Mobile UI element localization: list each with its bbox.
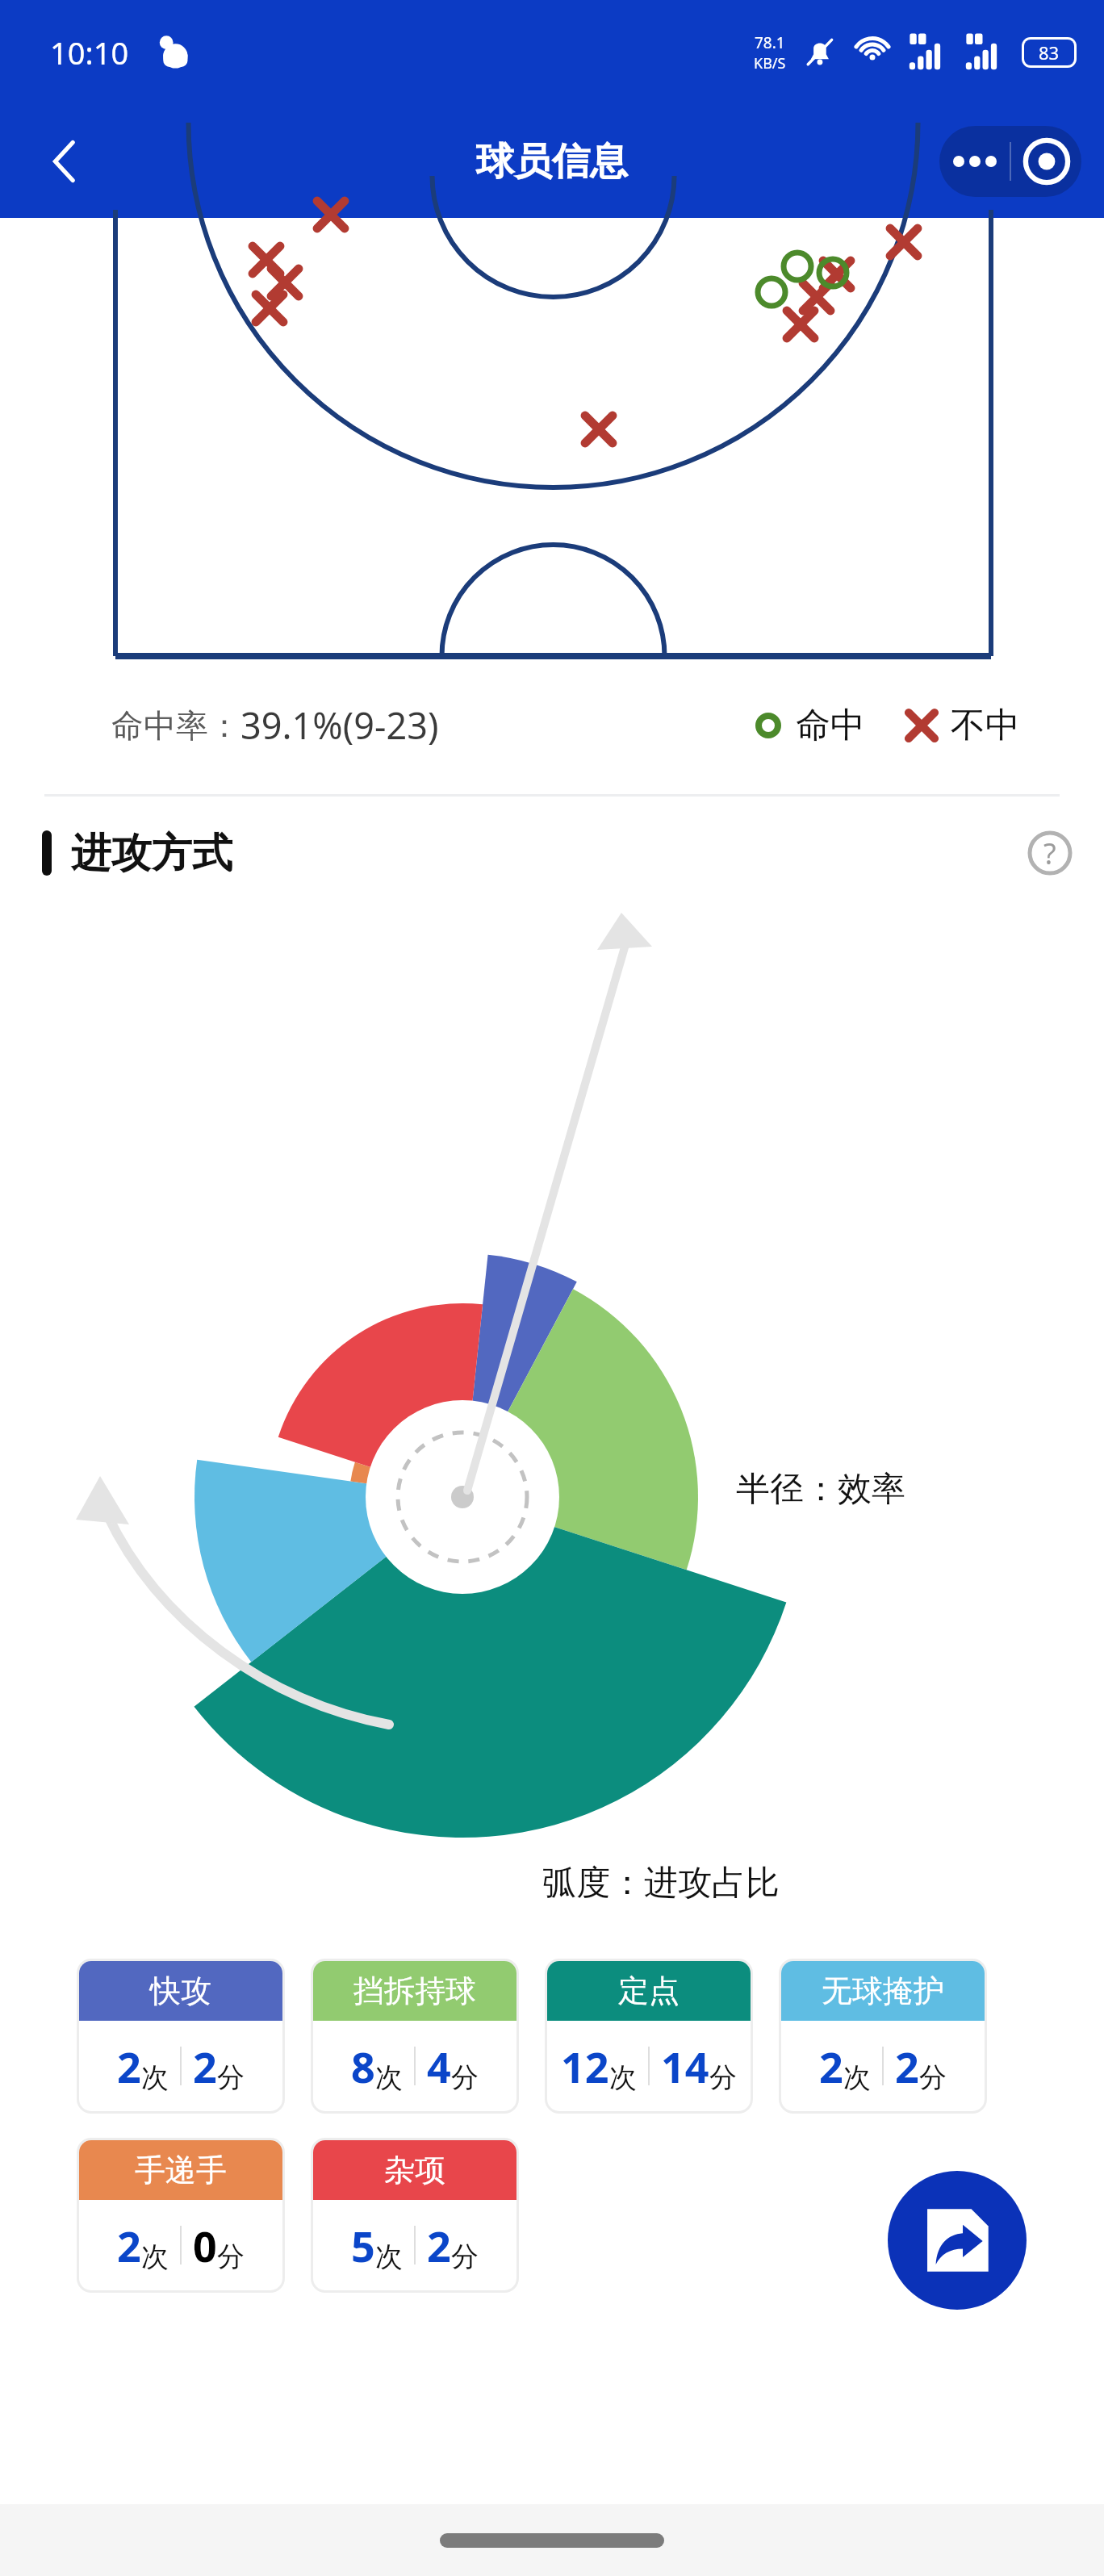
button[interactable]: Close [1011,126,1081,197]
staticText: 83 [1039,40,1060,65]
staticText: 分 [451,2060,479,2095]
staticText: 进攻方式 [71,828,232,879]
staticText: 次 [141,2239,169,2274]
staticText: 次 [375,2239,403,2274]
staticText: 快攻 [150,1972,211,2010]
button[interactable]: Share [888,2171,1027,2310]
button[interactable]: 无球掩护 [781,1961,985,2111]
staticText: 2 [117,2217,141,2274]
staticText: 分 [451,2239,479,2274]
staticText: 5 [351,2217,375,2274]
staticText: 命中率： [111,705,240,746]
staticText: 2 [895,2038,919,2095]
staticText: KB/S [754,53,786,73]
button[interactable]: 挡拆持球 [313,1961,516,2111]
staticText: 次 [141,2060,169,2095]
staticText: 4 [427,2038,451,2095]
staticText: 分 [919,2060,947,2095]
staticText: 杂项 [384,2151,445,2189]
staticText: 定点 [618,1972,680,2010]
staticText: 14 [661,2038,709,2095]
staticText: 命中 [796,704,865,747]
staticText: 2 [427,2217,451,2274]
staticText: 次 [375,2060,403,2095]
button[interactable]: 手递手 [79,2140,282,2290]
staticText: 2 [117,2038,141,2095]
staticText: 78.1 [755,32,785,53]
button[interactable]: Help [1018,822,1081,884]
staticText: 10:10 [50,31,129,73]
staticText: 分 [709,2060,737,2095]
staticText: 球员信息 [476,138,628,186]
staticText: 挡拆持球 [353,1972,476,2010]
staticText: 无球掩护 [822,1972,944,2010]
staticText: 0 [193,2217,217,2274]
staticText: 8 [351,2038,375,2095]
staticText: 弧度：进攻占比 [542,1862,780,1905]
button[interactable]: Back [27,125,100,198]
staticText: 分 [217,2239,245,2274]
staticText: 次 [843,2060,871,2095]
button[interactable]: 定点 [547,1961,751,2111]
staticText: 39.1%(9-23) [240,700,439,750]
staticText: 分 [217,2060,245,2095]
staticText: 手递手 [135,2151,227,2189]
staticText: 不中 [951,704,1020,747]
button[interactable]: 杂项 [313,2140,516,2290]
staticText: 12 [561,2038,609,2095]
staticText: 次 [609,2060,637,2095]
staticText: 2 [193,2038,217,2095]
button[interactable]: More options [939,126,1010,197]
staticText: 半径：效率 [736,1468,905,1511]
staticText: 2 [819,2038,843,2095]
staticText: ? [1043,834,1056,873]
button[interactable]: 快攻 [79,1961,282,2111]
